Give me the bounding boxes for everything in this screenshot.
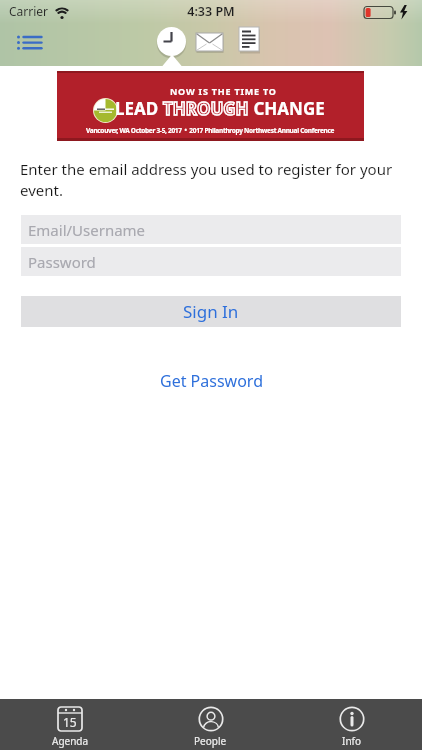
staticText: THROUGH xyxy=(163,97,249,120)
button[interactable] xyxy=(10,30,50,56)
staticText: NOW IS THE TIME TO xyxy=(170,85,277,97)
button[interactable]: NOW IS THE TIME TO xyxy=(57,71,364,141)
staticText: People xyxy=(194,734,227,748)
button[interactable]: Info xyxy=(281,699,422,750)
staticText: LEAD xyxy=(115,97,163,120)
staticText: Email/Username xyxy=(28,220,146,240)
button[interactable]: 15 xyxy=(0,699,140,750)
button[interactable]: Password xyxy=(21,247,401,276)
staticText: Agenda xyxy=(52,734,89,748)
staticText: Vancouver, WA October 3-5, 2017 • 2017 P… xyxy=(86,126,335,135)
staticText: Carrier xyxy=(9,3,49,19)
staticText: Enter the email address you used to regi… xyxy=(20,159,393,201)
staticText: 15 xyxy=(63,714,77,730)
button[interactable] xyxy=(196,33,223,51)
button[interactable]: Email/Username xyxy=(21,215,401,244)
staticText: 4:33 PM xyxy=(0,3,422,20)
staticText: CHANGE xyxy=(249,97,325,120)
button[interactable]: Sign In xyxy=(21,296,401,327)
button[interactable]: People xyxy=(140,699,281,750)
button[interactable] xyxy=(239,27,261,53)
staticText: Sign In xyxy=(183,300,239,323)
button[interactable] xyxy=(157,27,186,56)
staticText: Get Password xyxy=(160,370,263,392)
staticText: Info xyxy=(342,734,362,748)
staticText: Password xyxy=(28,252,96,272)
button[interactable]: Get Password xyxy=(156,366,267,396)
